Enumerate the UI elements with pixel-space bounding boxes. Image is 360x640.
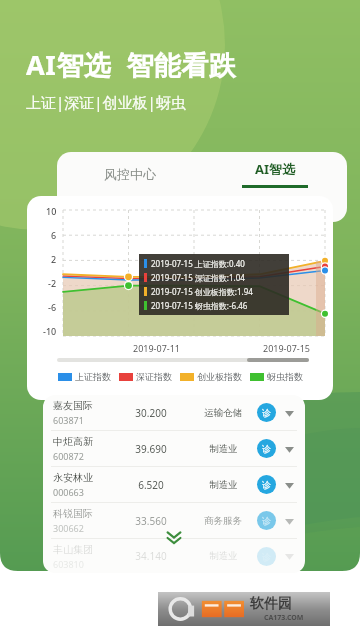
staticText: AI智选 <box>255 160 296 178</box>
button[interactable]: 展开更多 <box>161 525 187 551</box>
button[interactable]: 蚜虫指数 <box>250 371 303 382</box>
staticText: 软件园 <box>250 595 292 613</box>
staticText: 33.560 <box>135 514 167 528</box>
staticText: 诊 <box>262 479 271 490</box>
staticText: 2019-07-15 <box>263 342 310 354</box>
staticText: 2019-07-15 蚜虫指数:-6.46 <box>151 300 248 311</box>
button[interactable]: 科锐国际 <box>43 503 305 538</box>
staticText: 600872 <box>53 450 84 462</box>
button[interactable]: 更多 <box>281 477 297 493</box>
staticText: 30.200 <box>135 406 167 420</box>
button[interactable]: 更多 <box>281 548 297 564</box>
button[interactable]: 创业板指数 <box>180 371 242 382</box>
staticText: -10 <box>43 325 57 337</box>
button[interactable]: 深证指数 <box>119 371 172 382</box>
button[interactable]: 诊股 <box>257 547 276 566</box>
staticText: 2019-07-15 创业板指数:1.94 <box>151 286 253 297</box>
staticText: 2019-07-15 深证指数:1.04 <box>151 272 245 283</box>
staticText: 上证指数 <box>75 371 111 382</box>
staticText: AI智选 智能看跌 <box>26 46 237 83</box>
staticText: 永安林业 <box>53 471 93 484</box>
button[interactable]: 更多 <box>281 441 297 457</box>
staticText: 风控中心 <box>104 166 156 182</box>
staticText: 制造业 <box>209 550 238 562</box>
button[interactable]: 嘉友国际 <box>43 395 305 430</box>
staticText: 603871 <box>53 414 84 426</box>
staticText: 6 <box>51 229 57 241</box>
button[interactable]: 诊股 <box>257 511 276 530</box>
staticText: 诊 <box>262 515 271 526</box>
staticText: 300662 <box>53 522 84 534</box>
staticText: 2019-07-11 <box>133 342 180 354</box>
staticText: 中炬高新 <box>53 435 93 448</box>
button[interactable]: 更多 <box>281 405 297 421</box>
staticText: 丰山集团 <box>53 543 93 556</box>
staticText: 000663 <box>53 486 84 498</box>
staticText: 2019-07-15 上证指数:0.40 <box>151 258 245 269</box>
staticText: -2 <box>48 277 57 289</box>
button[interactable]: 诊股 <box>257 403 276 422</box>
button[interactable]: 风控中心 <box>57 152 202 196</box>
button[interactable]: 上证指数 <box>58 371 111 382</box>
staticText: 上证|深证|创业板|蚜虫 <box>26 92 186 112</box>
staticText: 运输仓储 <box>204 407 242 419</box>
button[interactable]: 更多 <box>281 513 297 529</box>
button[interactable]: 中炬高新 <box>43 431 305 466</box>
staticText: CA173.COM <box>264 613 304 623</box>
staticText: 10 <box>68 202 78 213</box>
staticText: 2 <box>51 253 57 265</box>
staticText: 蚜虫指数 <box>267 371 303 382</box>
staticText: 商务服务 <box>204 515 242 527</box>
staticText: 科锐国际 <box>53 507 93 520</box>
staticText: 创业板指数 <box>197 371 242 382</box>
staticText: 嘉友国际 <box>53 399 93 412</box>
staticText: 制造业 <box>209 443 238 455</box>
staticText: 603810 <box>53 558 84 570</box>
staticText: 6.520 <box>138 478 164 492</box>
staticText: 34.140 <box>135 549 167 563</box>
staticText: 制造业 <box>209 479 238 491</box>
staticText: -6 <box>48 301 57 313</box>
staticText: 诊 <box>262 443 271 454</box>
staticText: 深证指数 <box>136 371 172 382</box>
staticText: 39.690 <box>135 442 167 456</box>
staticText: 10 <box>46 205 57 217</box>
button[interactable]: 诊股 <box>257 475 276 494</box>
button[interactable]: 永安林业 <box>43 467 305 502</box>
button[interactable]: AI智选 <box>202 152 347 196</box>
button[interactable]: 诊股 <box>257 439 276 458</box>
button[interactable]: 丰山集团 <box>43 539 305 573</box>
staticText: 诊 <box>262 407 271 418</box>
